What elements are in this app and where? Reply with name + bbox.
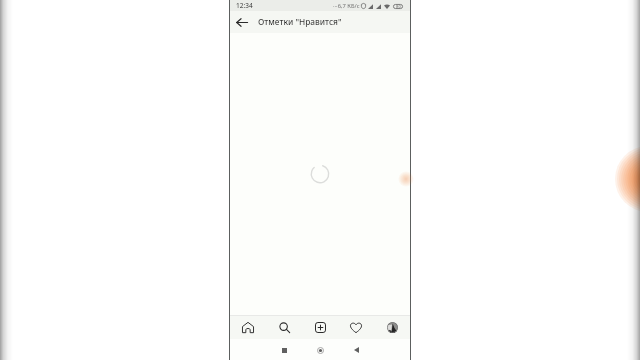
button[interactable]: Profile [374, 316, 410, 339]
button[interactable]: Activity [338, 316, 374, 339]
staticText: Отметки "Нравится" [258, 16, 342, 27]
button[interactable]: Create [302, 316, 338, 339]
button[interactable]: Back [231, 11, 253, 33]
button[interactable]: Recents [277, 343, 291, 357]
staticText: ···6,7 КБ/с [333, 2, 360, 10]
button[interactable]: Search [266, 316, 302, 339]
staticText: 12:34 [236, 1, 253, 10]
button[interactable]: Back [349, 343, 363, 357]
button[interactable]: Home [230, 316, 266, 339]
button[interactable]: Home [313, 343, 327, 357]
staticText: 80 [396, 4, 401, 9]
